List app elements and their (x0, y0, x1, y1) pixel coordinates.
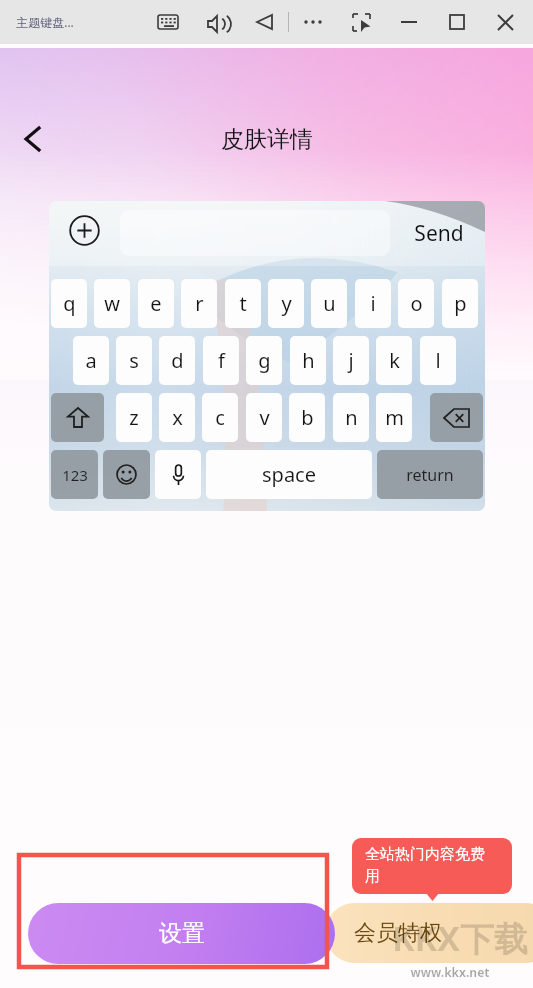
button[interactable]: Voice input (155, 450, 201, 499)
button[interactable]: Add (69, 215, 100, 246)
button[interactable]: i (355, 279, 391, 328)
staticText: Send (414, 219, 464, 248)
button[interactable]: Shift (51, 393, 104, 442)
staticText: d (171, 347, 184, 374)
button[interactable]: More (289, 0, 337, 44)
button[interactable]: c (202, 393, 238, 442)
button[interactable]: 会员特权 (325, 903, 533, 963)
staticText: c (215, 404, 225, 431)
button[interactable]: k (376, 336, 412, 385)
button[interactable]: e (138, 279, 174, 328)
button[interactable]: m (376, 393, 412, 442)
button[interactable]: Keyboard (144, 0, 192, 44)
staticText: y (281, 290, 292, 317)
button[interactable]: f (203, 336, 239, 385)
staticText: b (301, 404, 314, 431)
button[interactable]: x (159, 393, 195, 442)
staticText: 会员特权 (354, 919, 442, 947)
button[interactable]: space (206, 450, 372, 499)
button[interactable]: 设置 (28, 903, 335, 964)
button[interactable]: a (73, 336, 109, 385)
button[interactable]: Return (377, 450, 483, 499)
button[interactable]: w (94, 279, 130, 328)
staticText: q (63, 290, 76, 317)
staticText: g (258, 347, 271, 374)
button[interactable]: Send (394, 210, 484, 256)
staticText: n (345, 404, 358, 431)
button[interactable]: Emoji (103, 450, 150, 499)
button[interactable]: b (289, 393, 325, 442)
staticText: 设置 (159, 919, 205, 948)
staticText: 123 (62, 465, 88, 485)
button[interactable]: q (51, 279, 87, 328)
button[interactable]: p (442, 279, 478, 328)
button[interactable]: u (311, 279, 347, 328)
button[interactable]: v (246, 393, 282, 442)
button[interactable]: d (159, 336, 195, 385)
staticText: j (348, 347, 354, 374)
button[interactable]: h (290, 336, 326, 385)
staticText: t (239, 290, 247, 317)
staticText: l (435, 347, 441, 374)
button[interactable]: Back (240, 0, 288, 44)
button[interactable]: j (333, 336, 369, 385)
staticText: u (323, 290, 336, 317)
button[interactable]: Backspace (430, 393, 483, 442)
staticText: p (454, 290, 467, 317)
staticText: www.kkx.net (410, 964, 490, 980)
staticText: v (259, 404, 270, 431)
button[interactable]: z (116, 393, 152, 442)
button[interactable]: n (333, 393, 369, 442)
button[interactable]: o (398, 279, 434, 328)
button[interactable]: t (225, 279, 261, 328)
staticText: 全站热门内容免费用 (365, 845, 489, 886)
staticText: space (262, 461, 316, 488)
staticText: KKX下载 (392, 915, 528, 961)
staticText: h (302, 347, 315, 374)
staticText: 皮肤详情 (221, 125, 313, 154)
button[interactable]: Numbers (51, 450, 98, 499)
button[interactable]: Volume (192, 0, 240, 44)
button[interactable]: l (420, 336, 456, 385)
staticText: 主题键盘... (16, 14, 74, 30)
staticText: r (195, 290, 204, 317)
button[interactable]: Minimize (385, 0, 433, 44)
staticText: k (389, 347, 400, 374)
button[interactable]: Screenshot (337, 0, 385, 44)
button[interactable]: Back (10, 117, 54, 161)
staticText: s (129, 347, 139, 374)
staticText: o (410, 290, 423, 317)
staticText: x (172, 404, 183, 431)
staticText: w (104, 290, 120, 317)
button[interactable]: 全站热门内容免费用 (352, 838, 512, 894)
staticText: a (85, 347, 97, 374)
button[interactable]: g (246, 336, 282, 385)
staticText: return (406, 464, 454, 486)
button[interactable]: y (268, 279, 304, 328)
staticText: e (150, 290, 162, 317)
staticText: i (370, 290, 376, 317)
staticText: z (129, 404, 139, 431)
button[interactable]: r (181, 279, 217, 328)
button[interactable]: s (116, 336, 152, 385)
button[interactable]: Close (481, 0, 529, 44)
button[interactable]: Maximize (433, 0, 481, 44)
staticText: m (385, 404, 404, 431)
staticText: f (218, 347, 225, 374)
